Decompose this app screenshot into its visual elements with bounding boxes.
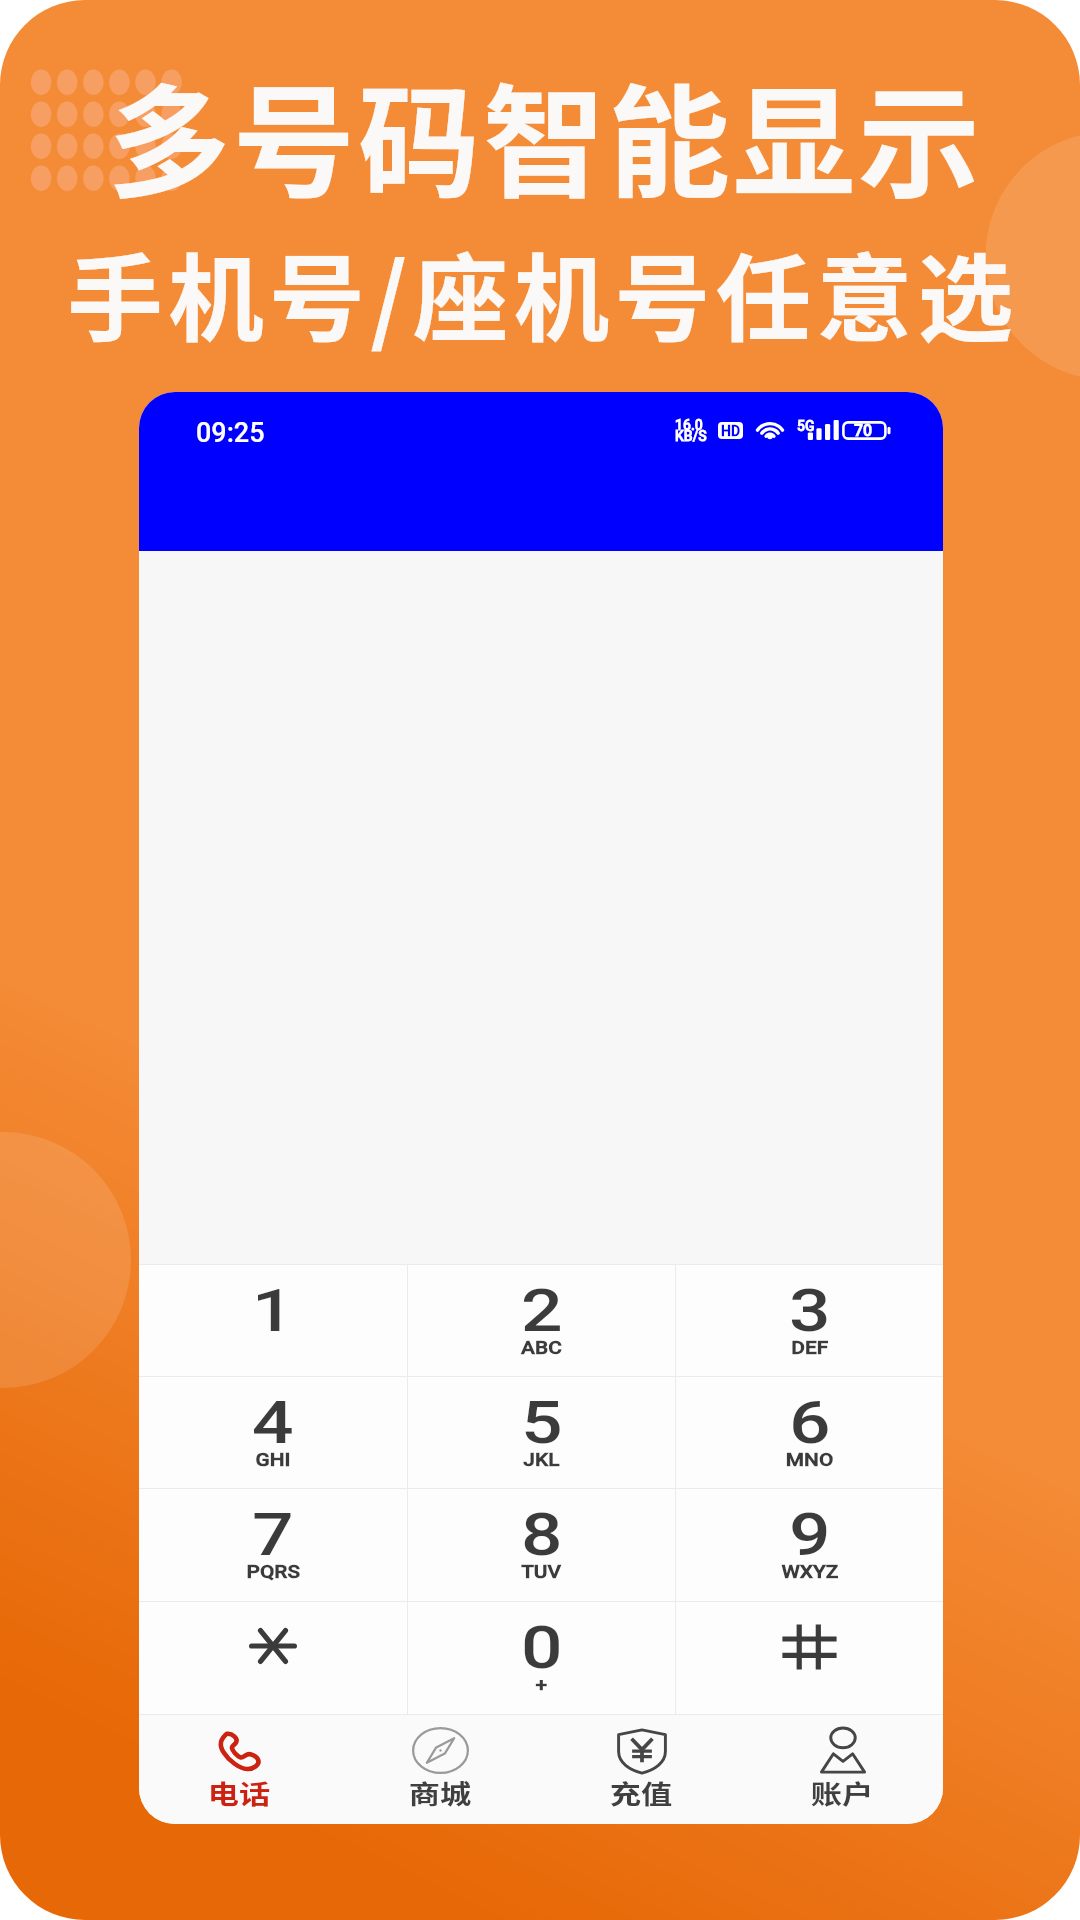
staticText: 0 [521,1613,563,1682]
staticText: 16.0 [675,417,703,433]
staticText: 4 [252,1388,294,1457]
button[interactable]: 2 [408,1265,675,1376]
staticText: 多号码智能显示 [108,45,983,222]
staticText: DEF [791,1336,829,1358]
staticText: GHI [255,1448,291,1470]
other: Mall [412,1727,469,1774]
staticText: 电话 [208,1774,271,1812]
button[interactable]: Recharge [541,1715,742,1824]
staticText: HD [721,423,741,439]
staticText: JKL [523,1448,560,1470]
staticText: 70 [854,421,873,440]
staticText: 充值 [610,1774,673,1812]
button[interactable]: 6 [676,1377,943,1488]
button[interactable]: 8 [408,1489,675,1601]
button[interactable]: 9 [676,1489,943,1601]
staticText: 1 [252,1276,294,1345]
staticText: 8 [521,1500,563,1569]
other: Phone [216,1731,263,1771]
staticText: 6 [789,1388,831,1457]
staticText: 7 [252,1500,294,1569]
button[interactable]: Account [742,1715,943,1824]
other: Recharge [616,1728,668,1775]
staticText: WXYZ [781,1560,839,1582]
staticText: ABC [521,1336,563,1358]
button[interactable]: 3 [676,1265,943,1376]
staticText: 商城 [409,1774,472,1812]
other: Account [819,1727,867,1774]
staticText: TUV [521,1560,562,1582]
staticText: 5G [797,418,815,434]
button[interactable]: 5 [408,1377,675,1488]
button[interactable]: Mall [340,1715,541,1824]
staticText: KB/S [675,428,707,444]
staticText: MNO [786,1448,834,1470]
staticText: PQRS [247,1560,300,1582]
staticText: 3 [789,1276,831,1345]
staticText: + [535,1673,548,1695]
button[interactable]: 7 [139,1489,407,1601]
staticText: 手机号/座机号任意选 [67,223,1019,361]
staticText: 5 [521,1388,563,1457]
staticText: 2 [521,1276,563,1345]
button[interactable]: 0 [408,1602,675,1714]
button[interactable] [676,1602,943,1714]
staticText: 09:25 [196,417,265,449]
button[interactable]: Phone [139,1715,340,1824]
staticText: 9 [789,1500,831,1569]
button[interactable]: 1 [139,1265,407,1376]
button[interactable] [139,1602,407,1714]
staticText: 账户 [811,1774,874,1812]
button[interactable]: 4 [139,1377,407,1488]
